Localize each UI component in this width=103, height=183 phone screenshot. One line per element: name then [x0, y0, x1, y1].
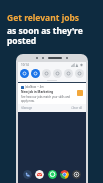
button[interactable]: Bluetooth: [31, 69, 40, 78]
staticText: See how our jobs match your skills and a…: [21, 95, 75, 102]
button[interactable]: JobsNow • 4m: [18, 83, 86, 104]
button[interactable]: Do not disturb: [42, 69, 51, 78]
button[interactable]: Flashlight: [53, 69, 62, 78]
staticText: Clear all: [71, 106, 83, 110]
staticText: JobsNow • 4m: [25, 85, 44, 89]
button[interactable]: Camera: [72, 170, 81, 179]
button[interactable]: Gmail: [35, 170, 44, 179]
staticText: Get relevant jobs: [7, 12, 80, 24]
button[interactable]: WhatsApp: [48, 170, 57, 179]
button[interactable]: Auto-rotate: [64, 69, 73, 78]
button[interactable]: Wi-Fi: [20, 69, 29, 78]
staticText: New job in Marketing: [21, 90, 54, 94]
button[interactable]: Clear all: [71, 106, 83, 110]
button[interactable]: Manage: [21, 106, 33, 110]
staticText: as soon as they're posted: [7, 25, 103, 46]
button[interactable]: Chrome: [60, 170, 69, 179]
button[interactable]: Phone: [23, 170, 32, 179]
staticText: Manage: [21, 106, 33, 110]
button[interactable]: Battery saver: [75, 69, 84, 78]
staticText: 10:14: [21, 63, 29, 67]
